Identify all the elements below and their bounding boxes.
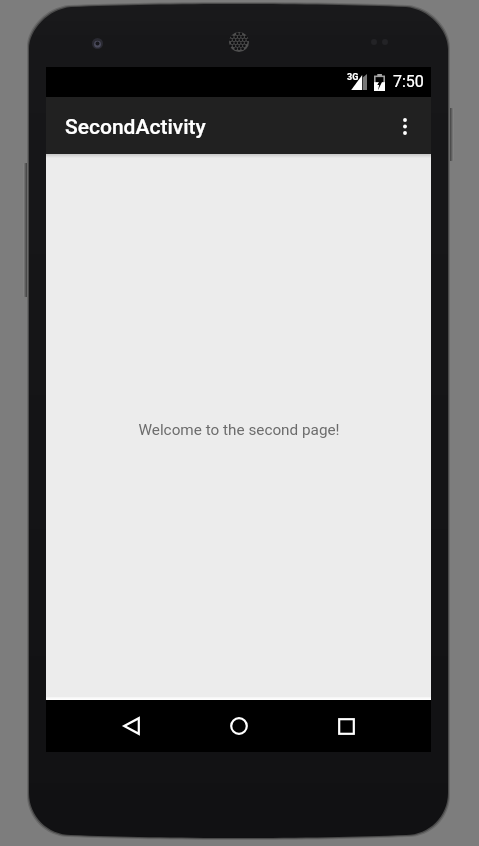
button[interactable]: Recent apps (320, 700, 372, 752)
staticText: 3G (347, 72, 359, 83)
button[interactable]: Back (105, 700, 157, 752)
staticText: 7:50 (393, 72, 424, 91)
button[interactable]: More options (383, 102, 431, 150)
staticText: Welcome to the second page! (138, 421, 340, 439)
button[interactable]: Home (213, 700, 265, 752)
staticText: SecondActivity (65, 115, 206, 140)
